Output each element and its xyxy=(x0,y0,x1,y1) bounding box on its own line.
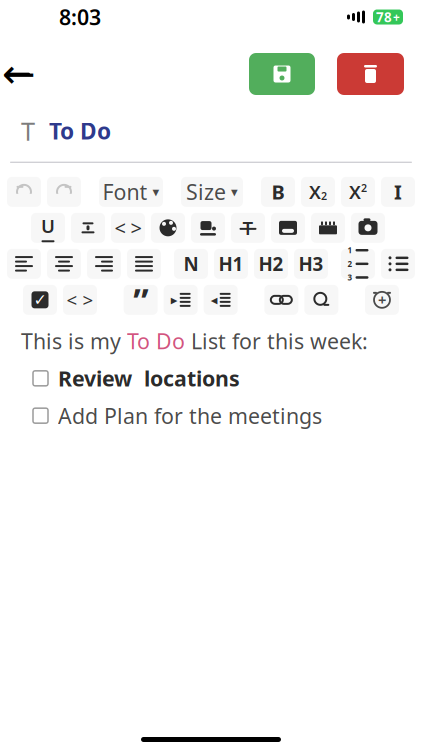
button[interactable]: Underline xyxy=(31,213,65,243)
staticText: U xyxy=(41,213,55,238)
staticText: 2 xyxy=(347,258,352,269)
button[interactable]: Undo xyxy=(7,177,41,207)
staticText: List for this week: xyxy=(185,327,368,355)
button[interactable]: Font xyxy=(99,177,163,207)
button[interactable]: Normal text xyxy=(174,249,208,279)
staticText: N xyxy=(183,251,198,276)
staticText: + xyxy=(378,290,386,310)
button[interactable]: Checklist xyxy=(23,285,57,315)
button[interactable]: Heading 2 xyxy=(254,249,288,279)
staticText: 78 xyxy=(376,8,392,26)
staticText: 2 xyxy=(361,181,367,195)
staticText: + xyxy=(393,9,400,25)
staticText: < > xyxy=(66,287,93,312)
staticText: H2 xyxy=(258,251,283,276)
staticText: ▾ xyxy=(152,184,159,199)
button[interactable]: Text color xyxy=(151,213,185,243)
button[interactable]: Insert image xyxy=(271,213,305,243)
staticText: Size xyxy=(186,178,226,206)
staticText: < > xyxy=(114,215,141,241)
staticText: 1 xyxy=(347,245,352,255)
button[interactable]: Code block xyxy=(63,285,97,315)
button[interactable]: Italic xyxy=(381,177,415,207)
staticText: ← xyxy=(2,51,36,97)
button[interactable]: Numbered list xyxy=(341,249,375,279)
button[interactable]: Heading 3 xyxy=(294,249,328,279)
staticText: T xyxy=(21,114,35,148)
button[interactable]: Redo xyxy=(47,177,81,207)
button[interactable]: Superscript xyxy=(341,177,375,207)
staticText: ◂ xyxy=(211,292,218,307)
button[interactable]: Indent xyxy=(164,285,198,315)
button[interactable]: Bulleted list xyxy=(381,249,415,279)
button[interactable]: Align right xyxy=(87,249,121,279)
staticText: 8:03 xyxy=(59,3,101,31)
button[interactable]: Camera xyxy=(351,213,385,243)
staticText: Add Plan for the meetings xyxy=(58,401,322,430)
button[interactable]: Insert video xyxy=(311,213,345,243)
button[interactable]: Bold xyxy=(261,177,295,207)
staticText: ▾ xyxy=(231,184,238,199)
button[interactable]: Back xyxy=(0,50,45,98)
button[interactable]: Save xyxy=(249,53,315,95)
button[interactable]: Clear formatting xyxy=(231,213,265,243)
button[interactable]: Highlight xyxy=(191,213,225,243)
button[interactable]: Subscript xyxy=(301,177,335,207)
staticText: Font xyxy=(102,178,147,206)
staticText: ▸ xyxy=(171,292,178,307)
staticText: X xyxy=(309,179,321,204)
button[interactable]: Size xyxy=(181,177,243,207)
button[interactable]: Align center xyxy=(47,249,81,279)
button[interactable]: Search xyxy=(304,285,338,315)
staticText: 3 xyxy=(347,272,352,283)
staticText: To Do xyxy=(127,327,185,355)
staticText: This is my xyxy=(21,327,127,355)
button[interactable]: Insert link xyxy=(264,285,298,315)
staticText: Review locations xyxy=(58,364,240,392)
button[interactable]: Align left xyxy=(7,249,41,279)
staticText: H1 xyxy=(218,251,243,276)
staticText: I xyxy=(394,179,402,205)
staticText: To Do xyxy=(49,116,111,146)
button[interactable]: Add reminder xyxy=(365,285,399,315)
button[interactable]: Inline code xyxy=(111,213,145,243)
staticText: ✓ xyxy=(33,291,46,309)
button[interactable]: Outdent xyxy=(204,285,238,315)
staticText: 2 xyxy=(321,189,327,203)
staticText: X xyxy=(349,179,361,204)
staticText: B xyxy=(271,179,284,205)
button[interactable]: Block quote xyxy=(124,285,158,315)
staticText: ” xyxy=(133,277,148,323)
button[interactable]: Justify xyxy=(127,249,161,279)
staticText: H3 xyxy=(298,251,323,276)
button[interactable]: Heading 1 xyxy=(214,249,248,279)
button[interactable]: Delete xyxy=(337,53,404,95)
staticText: T xyxy=(242,215,253,240)
button[interactable]: Strikethrough xyxy=(71,213,105,243)
